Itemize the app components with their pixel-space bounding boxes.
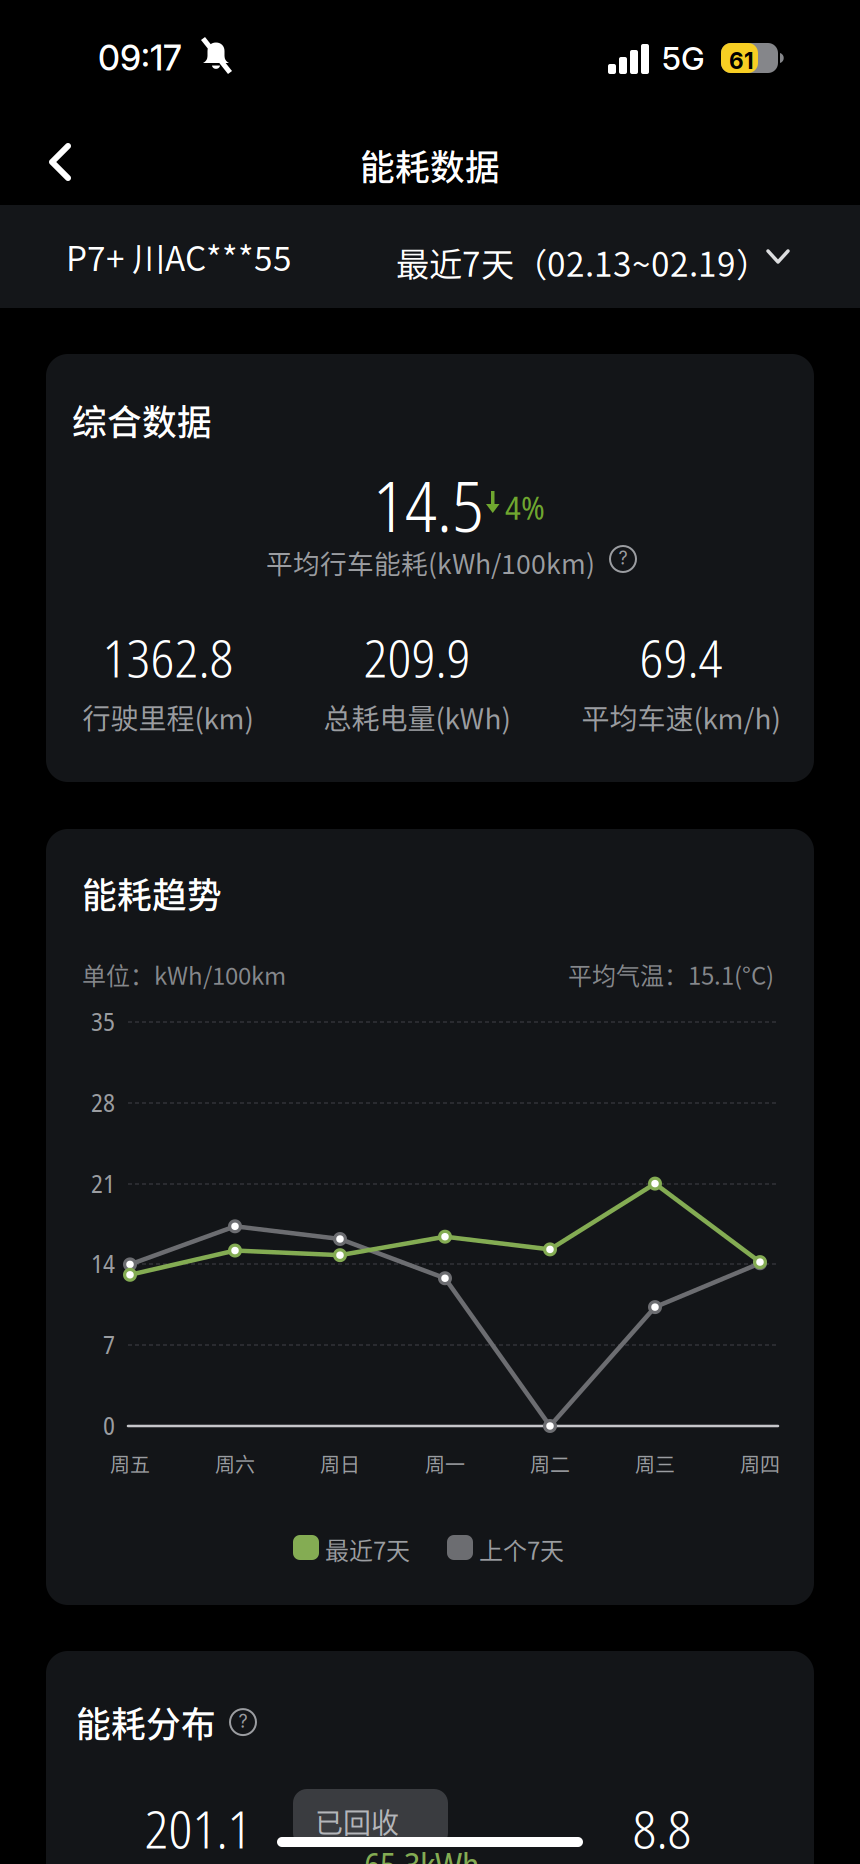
staticText: 09:17 — [98, 37, 182, 79]
staticText: 平均气温：15.1(°C) — [568, 957, 774, 992]
staticText: 周三 — [635, 1449, 675, 1478]
staticText: 周日 — [320, 1449, 360, 1478]
staticText: 5G — [662, 39, 705, 78]
staticText: 综合数据 — [72, 395, 212, 445]
staticText: 21 — [91, 1166, 115, 1200]
staticText: 能耗趋势 — [82, 868, 222, 918]
staticText: 201.1 — [144, 1793, 251, 1864]
button[interactable]: Back — [0, 118, 108, 206]
staticText: 最近7天 — [325, 1532, 410, 1567]
staticText: ? — [238, 1710, 247, 1732]
staticText: 单位：kWh/100km — [82, 957, 286, 992]
staticText: 最近7天（02.13~02.19） — [396, 238, 769, 286]
button[interactable]: P7+ 川AC***55 — [52, 205, 320, 308]
staticText: 7 — [103, 1327, 115, 1361]
staticText: 已回收 — [315, 1801, 399, 1841]
staticText: 周五 — [110, 1449, 150, 1478]
staticText: 周四 — [740, 1449, 780, 1478]
staticText: 行驶里程(km) — [82, 697, 253, 737]
staticText: 4% — [505, 484, 545, 529]
staticText: ? — [618, 547, 627, 569]
staticText: 平均行车能耗(kWh/100km) — [266, 543, 595, 582]
staticText: 14 — [91, 1246, 115, 1280]
staticText: 0 — [103, 1408, 115, 1442]
staticText: 能耗分布 — [76, 1697, 216, 1747]
staticText: 61 — [729, 47, 754, 74]
staticText: 65.3kWh — [364, 1841, 480, 1864]
staticText: 周二 — [530, 1449, 570, 1478]
staticText: 8.8 — [632, 1793, 691, 1864]
staticText: P7+ 川AC***55 — [66, 232, 292, 281]
staticText: 35 — [91, 1004, 115, 1038]
button[interactable]: 最近7天（02.13~02.19） — [396, 205, 800, 308]
staticText: 上个7天 — [479, 1532, 564, 1567]
staticText: 能耗数据 — [360, 140, 500, 190]
staticText: 总耗电量(kWh) — [323, 697, 510, 737]
staticText: 69.4 — [639, 622, 722, 693]
staticText: 平均车速(km/h) — [581, 697, 780, 737]
staticText: 28 — [91, 1085, 115, 1119]
staticText: 周六 — [215, 1449, 255, 1478]
staticText: 14.5 — [373, 458, 484, 552]
staticText: 周一 — [425, 1449, 465, 1478]
staticText: 1362.8 — [102, 622, 233, 693]
staticText: 209.9 — [363, 622, 470, 693]
